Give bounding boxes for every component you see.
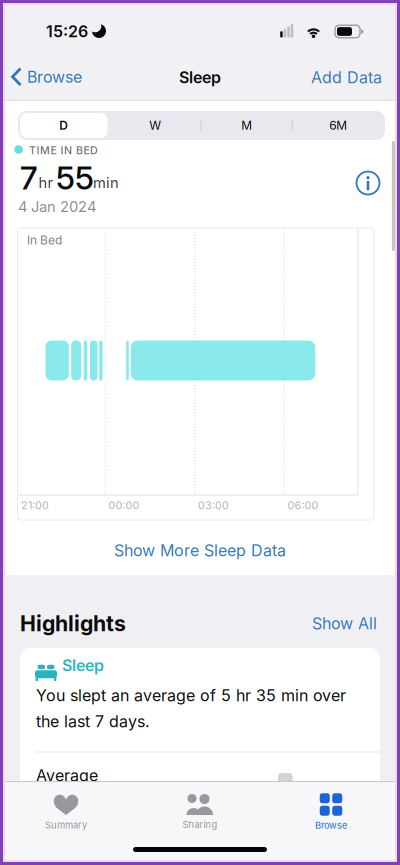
staticText: D <box>59 118 68 133</box>
staticText: hr <box>38 174 53 191</box>
staticText: Browse <box>315 820 347 831</box>
button[interactable]: Show More Sleep Data <box>114 541 286 560</box>
staticText: 55 <box>56 159 94 197</box>
staticText: 06:00 <box>287 499 318 512</box>
staticText: Average <box>36 766 98 785</box>
button[interactable]: Browse <box>276 788 386 836</box>
staticText: W <box>149 118 161 133</box>
staticText: Browse <box>27 68 82 86</box>
staticText: Sleep <box>179 68 221 87</box>
staticText: Sleep <box>62 656 104 675</box>
button[interactable]: W <box>110 113 201 138</box>
button[interactable]: Browse <box>11 67 82 87</box>
staticText: the last 7 days. <box>36 712 150 731</box>
button[interactable]: About Time in Bed <box>356 171 379 194</box>
staticText: Show More Sleep Data <box>114 541 286 560</box>
button[interactable]: M <box>201 113 292 138</box>
staticText: 03:00 <box>198 499 229 512</box>
staticText: min <box>93 174 119 191</box>
staticText: Add Data <box>311 68 382 87</box>
staticText: You slept an average of 5 hr 35 min over <box>36 686 346 705</box>
staticText: 4 Jan 2024 <box>18 198 96 215</box>
staticText: 00:00 <box>109 499 140 512</box>
staticText: 6M <box>329 118 347 133</box>
button[interactable]: Show All <box>312 614 377 633</box>
staticText: 7 <box>20 159 37 197</box>
button[interactable]: Summary <box>11 788 121 836</box>
button[interactable]: 6M <box>293 113 384 138</box>
staticText: 15:26 <box>46 22 88 41</box>
button[interactable]: D <box>20 113 107 138</box>
button[interactable]: Add Data <box>311 68 382 87</box>
staticText: In Bed <box>27 233 62 247</box>
button[interactable]: Sharing <box>145 788 255 836</box>
staticText: Show All <box>312 614 377 633</box>
staticText: Highlights <box>20 611 126 636</box>
staticText: M <box>241 118 252 133</box>
staticText: Sharing <box>182 819 217 830</box>
button[interactable]: Sleep <box>20 648 380 800</box>
staticText: Summary <box>45 819 87 830</box>
staticText: 21:00 <box>21 499 49 512</box>
staticText: TIME IN BED <box>29 144 98 157</box>
